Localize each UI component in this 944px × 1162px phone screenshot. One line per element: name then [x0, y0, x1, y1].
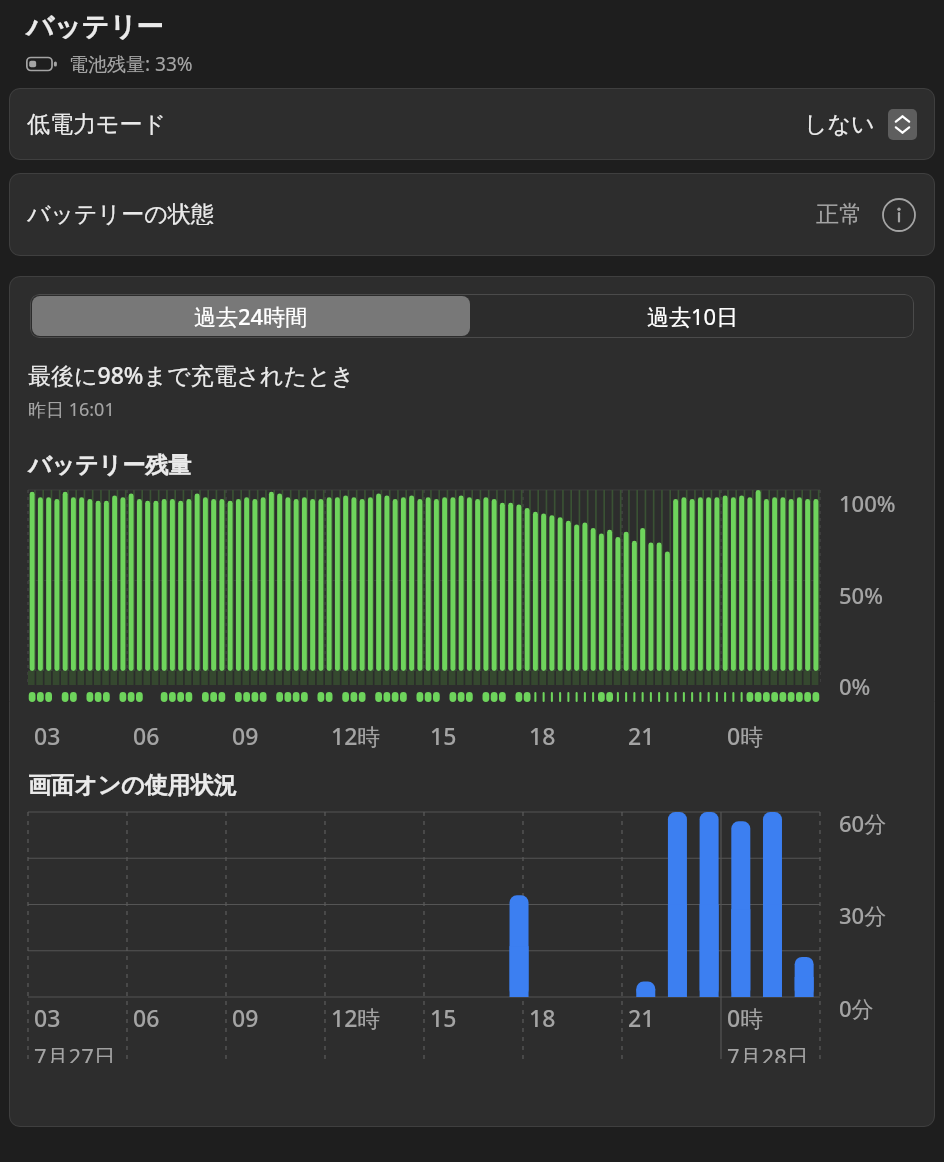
staticText: 50% — [839, 580, 883, 610]
staticText: 昨日 16:01 — [28, 397, 115, 422]
staticText: 7月27日 — [34, 1041, 116, 1063]
staticText: 18 — [529, 720, 556, 751]
staticText: 過去10日 — [647, 301, 739, 331]
staticText: 電池残量: 33% — [69, 51, 193, 77]
staticText: 最後に98%まで充電されたとき — [28, 359, 355, 390]
staticText: 06 — [133, 1002, 160, 1033]
button[interactable]: バッテリーの状態の詳細 — [881, 197, 917, 233]
staticText: 12時 — [331, 720, 381, 751]
button[interactable]: 低電力モードを選択 — [888, 109, 917, 140]
staticText: 0% — [839, 671, 871, 701]
button[interactable]: 過去24時間 — [32, 296, 470, 336]
staticText: 12時 — [331, 1002, 381, 1033]
staticText: 09 — [232, 1002, 259, 1033]
staticText: 低電力モード — [27, 110, 167, 139]
staticText: 15 — [430, 720, 457, 751]
staticText: 30分 — [839, 900, 887, 930]
staticText: 18 — [529, 1002, 556, 1033]
staticText: 03 — [34, 720, 61, 751]
staticText: 09 — [232, 720, 259, 751]
staticText: 過去24時間 — [194, 301, 308, 331]
staticText: バッテリーの状態 — [27, 200, 214, 229]
staticText: 0時 — [727, 720, 764, 751]
staticText: しない — [804, 110, 875, 139]
staticText: 100% — [839, 488, 896, 518]
staticText: バッテリー — [26, 10, 164, 44]
staticText: 60分 — [839, 808, 887, 838]
staticText: 0分 — [839, 993, 874, 1023]
staticText: 21 — [628, 1002, 655, 1033]
staticText: 画面オンの使用状況 — [28, 771, 237, 800]
staticText: 21 — [628, 720, 655, 751]
staticText: 06 — [133, 720, 160, 751]
staticText: バッテリー残量 — [28, 451, 192, 480]
staticText: 03 — [34, 1002, 61, 1033]
staticText: 7月28日 — [727, 1041, 809, 1063]
staticText: 正常 — [816, 200, 862, 229]
staticText: 15 — [430, 1002, 457, 1033]
staticText: 0時 — [727, 1002, 764, 1033]
button[interactable]: 低電力モード — [9, 88, 935, 160]
button[interactable]: 過去10日 — [472, 294, 914, 338]
button[interactable]: バッテリーの状態 — [9, 173, 935, 256]
